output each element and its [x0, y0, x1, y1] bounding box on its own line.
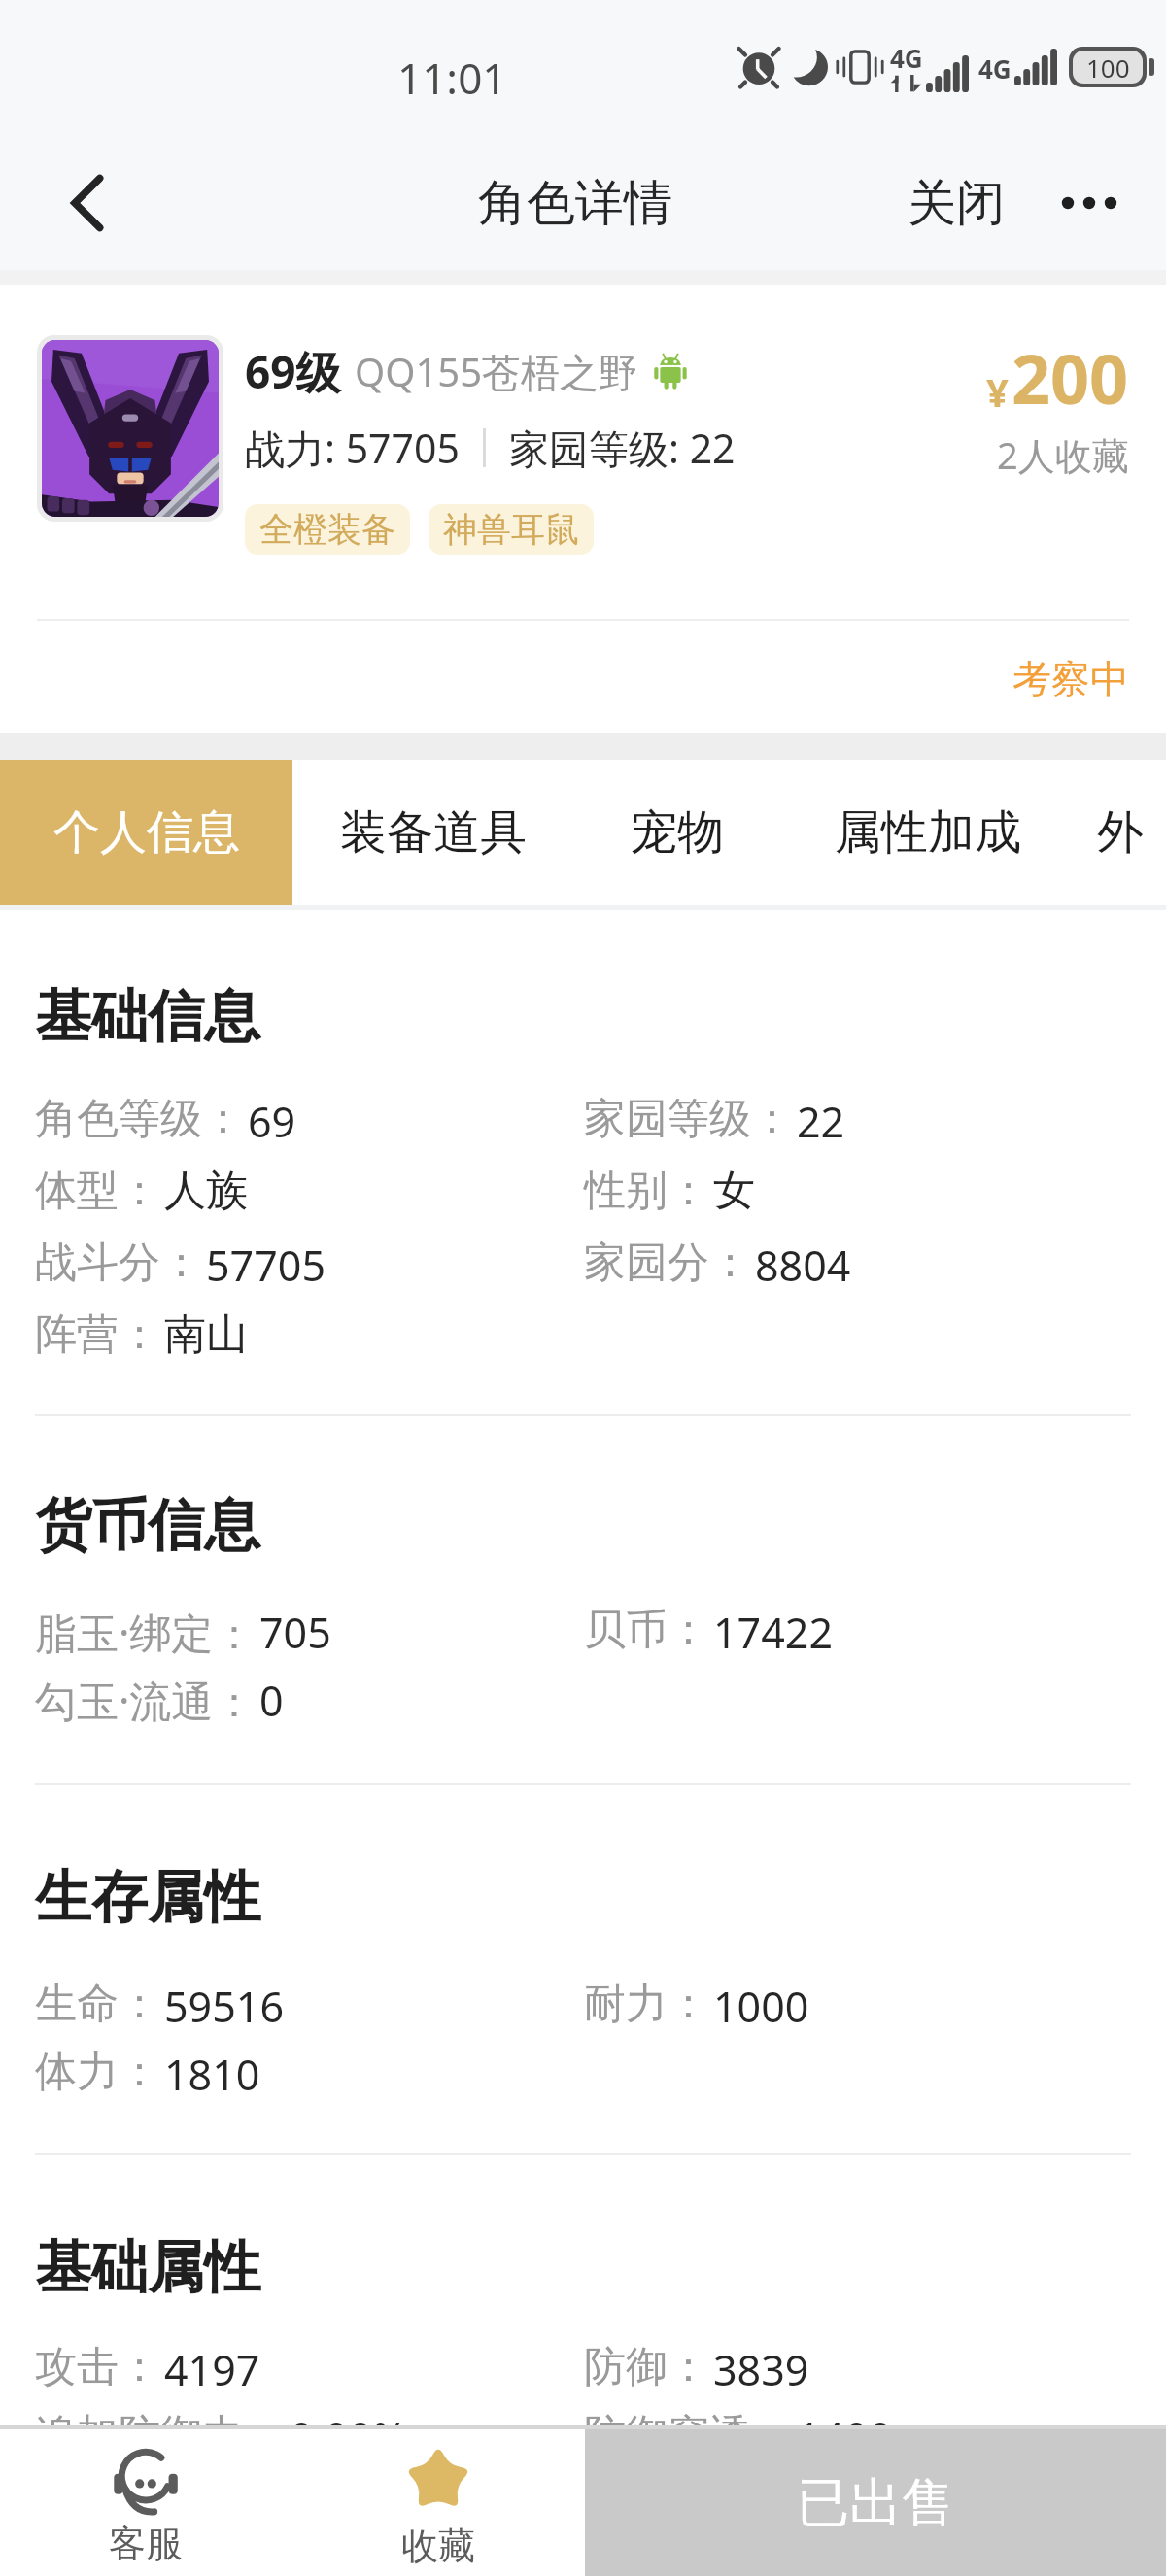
- button[interactable]: 关闭: [892, 155, 1020, 252]
- staticText: 考察中: [1012, 655, 1129, 703]
- staticText: 69: [248, 1093, 296, 1150]
- staticText: 客服: [109, 2521, 183, 2567]
- staticText: 性别：: [584, 1165, 709, 1217]
- staticText: 防御穿透：: [584, 2409, 793, 2461]
- staticText: 家园等级：: [584, 1093, 793, 1145]
- button[interactable]: Customer service: [0, 2429, 291, 2576]
- staticText: 57705: [206, 1237, 326, 1294]
- staticText: 已出售: [797, 2470, 954, 2536]
- staticText: 2人收藏: [997, 429, 1129, 480]
- staticText: 贝币：: [584, 1604, 709, 1656]
- button[interactable]: 神兽耳鼠: [429, 504, 594, 555]
- staticText: 22: [797, 1093, 845, 1150]
- button[interactable]: 外: [1075, 760, 1166, 905]
- staticText: 南山: [164, 1308, 248, 1361]
- staticText: 勾玉·流通：: [35, 1672, 256, 1729]
- staticText: QQ155苍梧之野: [355, 345, 638, 398]
- button[interactable]: 全橙装备: [245, 504, 410, 555]
- staticText: 脂玉·绑定：: [35, 1604, 256, 1661]
- staticText: 1000: [713, 1978, 809, 2035]
- staticText: 17422: [713, 1604, 833, 1661]
- staticText: 攻击：: [35, 2341, 160, 2393]
- staticText: 100: [1086, 51, 1130, 84]
- staticText: 关闭: [908, 173, 1005, 234]
- staticText: 个人信息: [53, 803, 240, 862]
- staticText: 体力：: [35, 2046, 160, 2098]
- staticText: 属性加成: [835, 803, 1021, 862]
- staticText: 耐力：: [584, 1978, 709, 2030]
- staticText: 8804: [755, 1237, 851, 1294]
- staticText: 基础属性: [35, 2232, 260, 2303]
- staticText: 69级: [245, 341, 341, 402]
- staticText: 59516: [164, 1978, 284, 2035]
- staticText: 追加防御力：: [35, 2409, 286, 2461]
- staticText: 宠物: [631, 803, 724, 862]
- staticText: 装备道具: [340, 803, 527, 862]
- staticText: 4G: [978, 51, 1012, 85]
- staticText: ¥: [986, 365, 1009, 418]
- staticText: 战力: 57705: [245, 421, 460, 475]
- staticText: 体型：: [35, 1165, 160, 1217]
- button[interactable]: Character avatar: [37, 335, 223, 522]
- staticText: 人族: [164, 1165, 248, 1217]
- button[interactable]: 宠物: [574, 760, 780, 905]
- staticText: 收藏: [401, 2523, 475, 2569]
- staticText: 家园分：: [584, 1237, 751, 1289]
- staticText: 战斗分：: [35, 1237, 202, 1289]
- staticText: 3839: [713, 2341, 809, 2398]
- staticText: 女: [713, 1165, 755, 1217]
- button[interactable]: 考察中: [999, 641, 1143, 717]
- staticText: 货币信息: [35, 1490, 260, 1561]
- button[interactable]: More options: [1046, 159, 1133, 247]
- staticText: 外: [1097, 803, 1144, 862]
- button[interactable]: Favorite: [291, 2429, 585, 2576]
- staticText: 神兽耳鼠: [443, 508, 579, 551]
- staticText: 基础信息: [35, 981, 260, 1052]
- staticText: 角色详情: [478, 173, 672, 234]
- staticText: 生存属性: [35, 1862, 260, 1933]
- button[interactable]: Back: [45, 161, 128, 245]
- button[interactable]: 装备道具: [292, 760, 574, 905]
- staticText: 0.00%: [290, 2409, 408, 2466]
- staticText: 4G: [890, 41, 923, 75]
- staticText: 防御：: [584, 2341, 709, 2393]
- staticText: 阵营：: [35, 1308, 160, 1361]
- button[interactable]: 已出售: [585, 2429, 1166, 2576]
- button[interactable]: 属性加成: [780, 760, 1075, 905]
- staticText: 200: [1012, 331, 1129, 424]
- staticText: 生命：: [35, 1978, 160, 2030]
- staticText: 角色等级：: [35, 1093, 244, 1145]
- button[interactable]: 个人信息: [0, 760, 292, 905]
- staticText: 1400: [797, 2409, 893, 2466]
- staticText: 4197: [164, 2341, 260, 2398]
- staticText: 0: [259, 1672, 284, 1729]
- staticText: 家园等级: 22: [509, 421, 736, 475]
- staticText: 11:01: [397, 49, 507, 107]
- staticText: 705: [259, 1604, 331, 1661]
- staticText: 全橙装备: [259, 508, 395, 551]
- staticText: 1810: [164, 2046, 260, 2103]
